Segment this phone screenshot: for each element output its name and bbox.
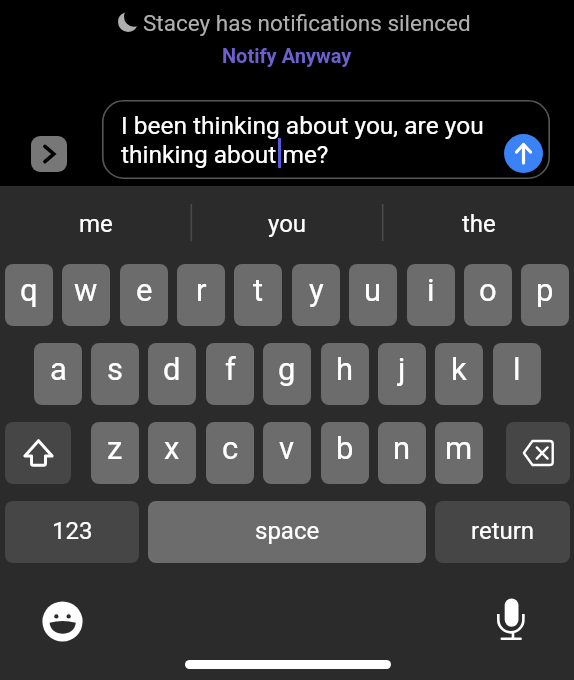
button[interactable]: a bbox=[34, 343, 82, 405]
button[interactable]: e bbox=[120, 264, 168, 326]
button[interactable]: k bbox=[435, 343, 483, 405]
staticText: b bbox=[336, 430, 354, 466]
button[interactable]: w bbox=[62, 264, 110, 326]
button[interactable]: Expand bbox=[31, 136, 67, 172]
staticText: k bbox=[451, 351, 467, 387]
button[interactable]: c bbox=[206, 422, 254, 484]
staticText: v bbox=[279, 430, 295, 466]
staticText: c bbox=[222, 430, 239, 466]
button[interactable]: Emoji bbox=[42, 601, 83, 642]
button[interactable]: n bbox=[378, 422, 426, 484]
button[interactable]: d bbox=[148, 343, 196, 405]
button[interactable]: j bbox=[378, 343, 426, 405]
staticText: q bbox=[20, 272, 38, 308]
button[interactable]: p bbox=[521, 264, 569, 326]
button[interactable]: Send bbox=[504, 134, 543, 173]
button[interactable]: return bbox=[435, 501, 570, 563]
staticText: i bbox=[427, 272, 435, 308]
button[interactable]: Shift bbox=[5, 422, 71, 484]
staticText: z bbox=[107, 430, 123, 466]
button[interactable]: f bbox=[206, 343, 254, 405]
staticText: g bbox=[278, 351, 296, 387]
staticText: I been thinking about you, are you think… bbox=[121, 111, 484, 169]
button[interactable]: u bbox=[349, 264, 397, 326]
staticText: t bbox=[253, 272, 264, 308]
button[interactable]: x bbox=[148, 422, 196, 484]
staticText: me bbox=[79, 210, 113, 238]
button[interactable]: r bbox=[177, 264, 225, 326]
button[interactable]: z bbox=[91, 422, 139, 484]
button[interactable]: s bbox=[91, 343, 139, 405]
button[interactable]: y bbox=[292, 264, 340, 326]
staticText: r bbox=[196, 272, 207, 308]
staticText: you bbox=[268, 210, 307, 238]
staticText: l bbox=[513, 351, 521, 387]
button[interactable]: t bbox=[234, 264, 282, 326]
staticText: h bbox=[336, 351, 354, 387]
staticText: Stacey has notifications silenced bbox=[143, 10, 471, 36]
button[interactable]: m bbox=[435, 422, 483, 484]
button[interactable]: l bbox=[493, 343, 541, 405]
staticText: e bbox=[136, 272, 153, 308]
staticText: w bbox=[74, 272, 98, 308]
button[interactable]: q bbox=[5, 264, 53, 326]
staticText: the bbox=[462, 210, 496, 238]
button[interactable]: Notify Anyway bbox=[222, 44, 352, 67]
button[interactable]: v bbox=[263, 422, 311, 484]
staticText: y bbox=[309, 272, 324, 308]
staticText: x bbox=[164, 430, 180, 466]
staticText: 123 bbox=[52, 517, 93, 545]
button[interactable]: the bbox=[383, 186, 574, 264]
staticText: d bbox=[163, 351, 181, 387]
staticText: Notify Anyway bbox=[222, 44, 352, 67]
button[interactable]: 123 bbox=[5, 501, 139, 563]
button[interactable]: Delete bbox=[506, 422, 570, 484]
staticText: s bbox=[107, 351, 123, 387]
staticText: return bbox=[471, 517, 535, 545]
button[interactable]: h bbox=[321, 343, 369, 405]
button[interactable]: i bbox=[407, 264, 455, 326]
button[interactable]: g bbox=[263, 343, 311, 405]
staticText: j bbox=[398, 351, 406, 387]
button[interactable]: o bbox=[464, 264, 512, 326]
staticText: a bbox=[50, 351, 67, 387]
staticText: u bbox=[364, 272, 382, 308]
staticText: f bbox=[225, 351, 236, 387]
button[interactable]: me bbox=[0, 186, 192, 264]
staticText: o bbox=[479, 272, 497, 308]
staticText: n bbox=[393, 430, 411, 466]
staticText: space bbox=[255, 517, 320, 545]
button[interactable]: b bbox=[321, 422, 369, 484]
button[interactable]: space bbox=[148, 501, 426, 563]
staticText: m bbox=[445, 430, 473, 466]
staticText: p bbox=[536, 272, 554, 308]
button[interactable]: Voice input bbox=[491, 598, 535, 642]
button[interactable]: you bbox=[192, 186, 383, 264]
